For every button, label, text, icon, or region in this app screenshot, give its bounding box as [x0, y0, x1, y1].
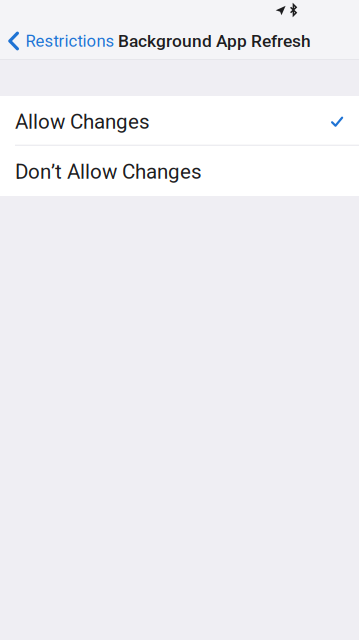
staticText: Don’t Allow Changes	[15, 160, 202, 184]
button[interactable]: Restrictions	[0, 21, 118, 61]
staticText: Background App Refresh	[118, 31, 311, 51]
button[interactable]: Don’t Allow Changes	[0, 146, 359, 196]
button[interactable]: Allow Changes	[0, 96, 359, 146]
staticText: Restrictions	[26, 31, 115, 51]
staticText: Allow Changes	[15, 110, 150, 134]
